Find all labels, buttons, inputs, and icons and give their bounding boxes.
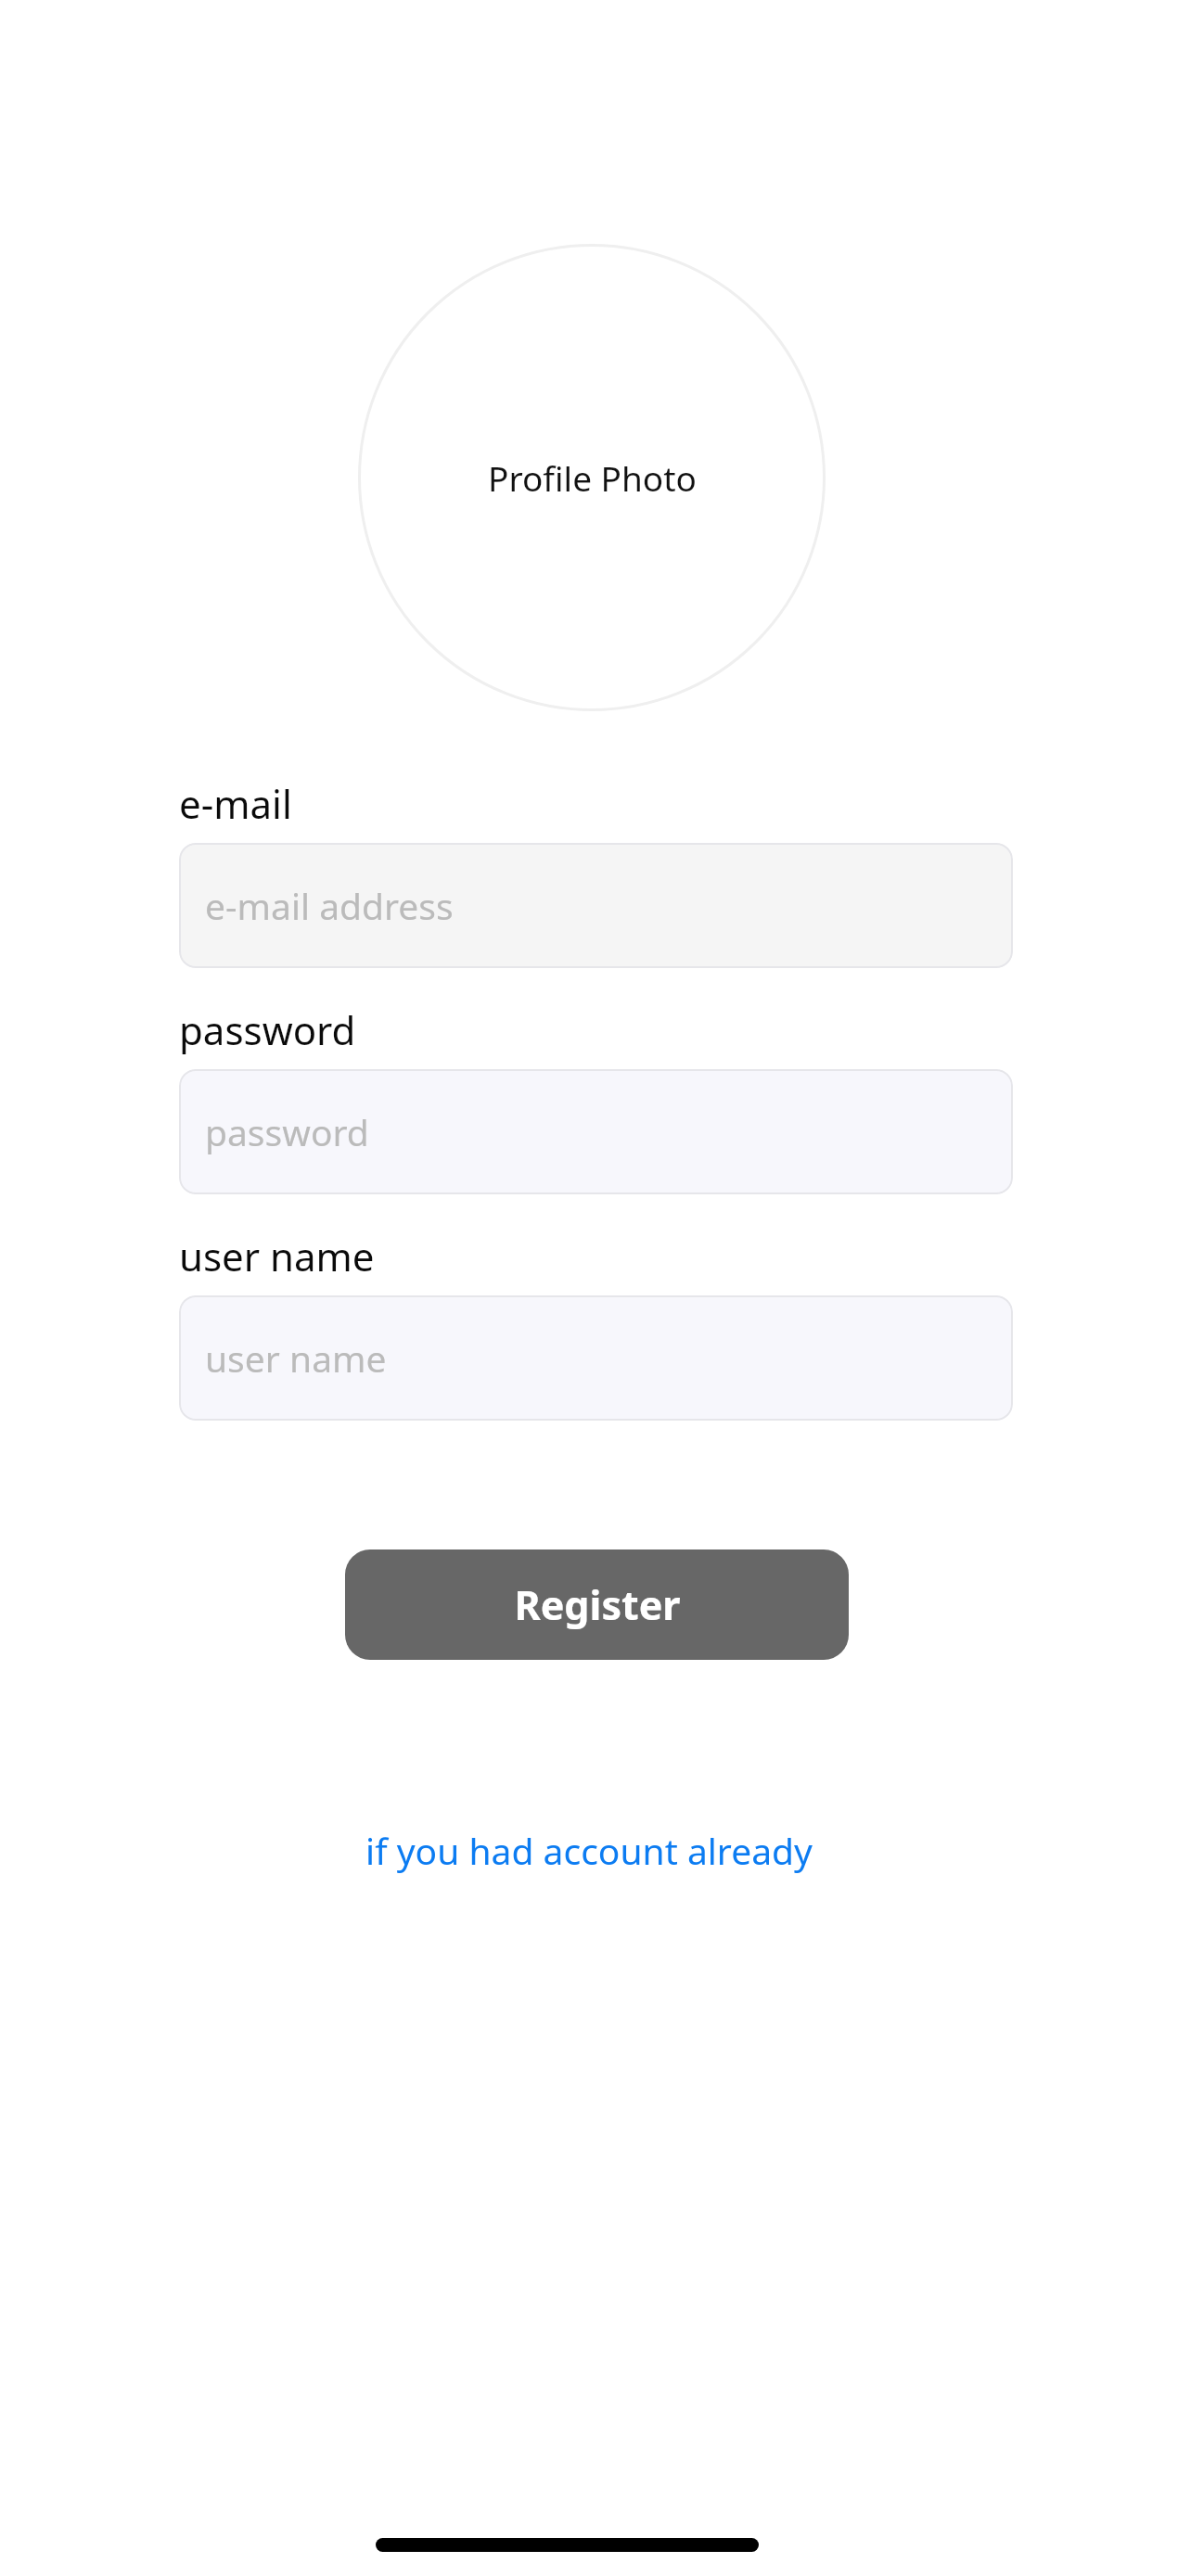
staticText: password: [179, 1003, 356, 1056]
button[interactable]: user name: [179, 1295, 1013, 1421]
staticText: Profile Photo: [488, 454, 697, 501]
staticText: e-mail address: [205, 881, 454, 930]
staticText: if you had account already: [365, 1826, 813, 1875]
staticText: e-mail: [179, 777, 292, 830]
button[interactable]: if you had account already: [337, 1813, 841, 1887]
button[interactable]: Profile Photo: [358, 244, 826, 711]
button[interactable]: Register: [345, 1549, 849, 1660]
staticText: user name: [205, 1333, 387, 1383]
staticText: Register: [514, 1577, 681, 1632]
button[interactable]: e-mail address: [179, 843, 1013, 968]
staticText: user name: [179, 1230, 375, 1282]
button[interactable]: password: [179, 1069, 1013, 1194]
staticText: password: [205, 1107, 369, 1156]
